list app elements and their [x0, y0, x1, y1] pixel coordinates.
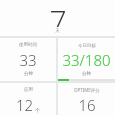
staticText: 天: [55, 28, 60, 34]
staticText: 个: [35, 107, 40, 113]
staticText: 今日目标: [78, 43, 96, 49]
staticText: 分钟: [24, 71, 33, 77]
staticText: 33: [19, 50, 37, 70]
staticText: 分钟: [82, 71, 91, 77]
staticText: 7: [49, 0, 67, 27]
button[interactable]: DPTIME评分: [58, 83, 115, 115]
staticText: 使用时间: [19, 42, 37, 48]
staticText: 应用: [24, 87, 33, 93]
staticText: DPTIME评分: [74, 87, 100, 93]
button[interactable]: 应用: [0, 83, 56, 115]
button[interactable]: 7: [0, 0, 115, 36]
staticText: 33/180: [62, 50, 111, 70]
button[interactable]: 使用时间: [0, 38, 56, 81]
button[interactable]: 今日目标: [58, 38, 115, 81]
staticText: 12: [16, 95, 34, 115]
staticText: 16: [78, 95, 96, 115]
